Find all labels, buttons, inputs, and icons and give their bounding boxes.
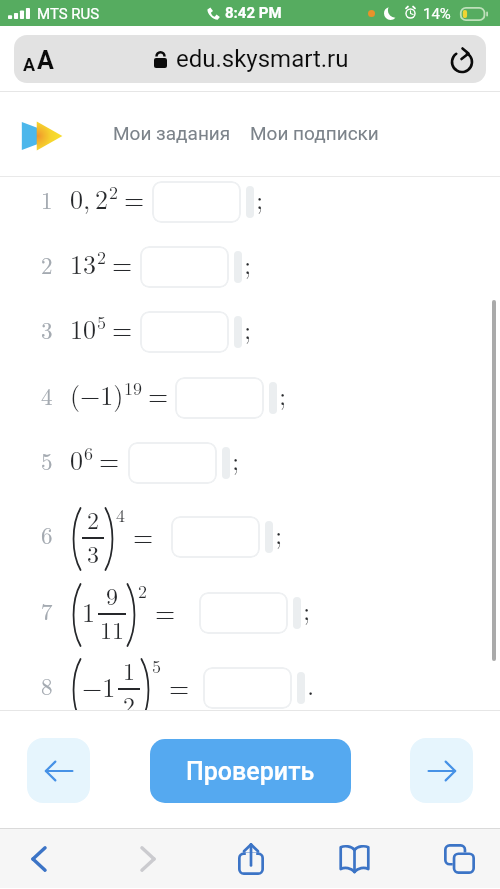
staticText: 9 xyxy=(106,578,118,612)
staticText: 1 xyxy=(82,593,96,630)
staticText: ; xyxy=(244,310,252,347)
button[interactable]: Мои задания xyxy=(106,114,238,152)
staticText: Мои задания xyxy=(113,122,231,144)
staticText: ; xyxy=(303,591,311,628)
staticText: 13 xyxy=(70,245,97,282)
staticText: . xyxy=(307,666,315,703)
staticText: 3 xyxy=(41,313,53,346)
staticText: 8 xyxy=(41,669,53,702)
staticText: 6 xyxy=(84,440,93,466)
button[interactable]: Forward xyxy=(119,831,177,886)
staticText: 2 xyxy=(87,502,99,536)
button[interactable]: Проверить xyxy=(150,739,351,803)
staticText: 5 xyxy=(41,444,53,477)
button[interactable]: edu.skysmart.ru xyxy=(154,45,349,73)
staticText: ; xyxy=(244,245,252,282)
staticText: = xyxy=(99,441,120,478)
staticText: = xyxy=(148,376,169,413)
staticText: 2 xyxy=(138,578,147,604)
button[interactable]: Reload xyxy=(438,35,486,83)
staticText: 0 xyxy=(70,441,84,478)
button[interactable]: Next xyxy=(410,738,473,803)
staticText: 1 xyxy=(41,183,53,216)
staticText: Мои подписки xyxy=(250,122,379,144)
staticText: ; xyxy=(279,376,287,413)
staticText: 2 xyxy=(41,248,53,281)
staticText: 11 xyxy=(100,612,124,646)
staticText: edu.skysmart.ru xyxy=(176,45,349,73)
button[interactable]: Answer field xyxy=(140,246,229,288)
staticText: ; xyxy=(275,515,283,552)
button[interactable]: Мои подписки xyxy=(243,114,386,152)
staticText: 2 xyxy=(97,244,106,270)
button[interactable]: Answer field xyxy=(175,377,264,419)
staticText: 19 xyxy=(124,375,142,401)
button[interactable]: Answer field xyxy=(171,516,260,558)
staticText: = xyxy=(124,180,145,217)
staticText: −1 xyxy=(82,668,116,705)
button[interactable]: Share xyxy=(222,831,280,886)
staticText: 5 xyxy=(97,309,106,335)
staticText: 2 xyxy=(123,687,135,721)
staticText: 3 xyxy=(87,536,99,570)
staticText: 2 xyxy=(109,179,118,205)
staticText: 5 xyxy=(152,653,161,679)
staticText: A xyxy=(37,46,54,75)
staticText: = xyxy=(112,310,133,347)
staticText: = xyxy=(112,245,133,282)
staticText: 7 xyxy=(41,594,53,627)
staticText: A xyxy=(23,54,36,75)
button[interactable]: Answer field xyxy=(199,592,288,634)
staticText: ; xyxy=(256,180,264,217)
button[interactable]: Answer field xyxy=(203,667,292,709)
button[interactable]: Page settings xyxy=(14,35,66,83)
staticText: 6 xyxy=(41,518,53,551)
button[interactable]: Answer field xyxy=(128,442,217,484)
button[interactable]: Answer field xyxy=(140,311,229,353)
staticText: 0, xyxy=(70,180,91,217)
button[interactable]: Bookmarks xyxy=(325,831,383,886)
staticText: 1 xyxy=(123,653,135,687)
button[interactable]: Previous xyxy=(27,738,90,803)
staticText: Проверить xyxy=(186,757,315,786)
staticText: 14% xyxy=(423,5,451,23)
staticText: 10 xyxy=(70,310,97,347)
button[interactable]: Back xyxy=(10,831,68,886)
staticText: 2 xyxy=(95,180,109,217)
staticText: 4 xyxy=(116,502,125,528)
button[interactable]: Tabs xyxy=(430,831,488,886)
staticText: = xyxy=(155,593,176,630)
staticText: (−1) xyxy=(70,376,124,413)
button[interactable]: Answer field xyxy=(152,181,241,223)
staticText: 8:42 PM xyxy=(225,4,282,22)
staticText: 4 xyxy=(41,379,53,412)
staticText: = xyxy=(169,668,190,705)
staticText: MTS RUS xyxy=(37,5,100,23)
staticText: ; xyxy=(232,441,240,478)
staticText: = xyxy=(133,517,154,554)
